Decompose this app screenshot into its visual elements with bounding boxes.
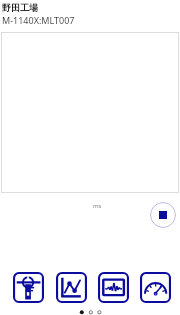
button[interactable]: Trend chart — [56, 272, 88, 303]
staticText: ms — [93, 202, 102, 210]
staticText: 野田工場 — [2, 2, 38, 13]
staticText: M-1140X:MLT007 — [2, 14, 75, 26]
button[interactable]: Settings — [13, 272, 45, 303]
button[interactable]: Stop measurement — [150, 202, 176, 228]
button[interactable]: Waveform — [98, 272, 130, 303]
button[interactable]: Gauge — [140, 272, 172, 303]
